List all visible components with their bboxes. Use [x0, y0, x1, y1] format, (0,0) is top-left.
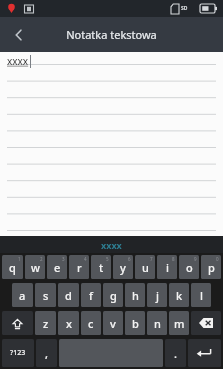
staticText: ?123: [10, 348, 26, 358]
staticText: ,: [45, 346, 49, 361]
button[interactable]: xxxx: [0, 52, 223, 236]
button[interactable]: j: [147, 283, 167, 307]
staticText: w: [31, 260, 40, 275]
button[interactable]: h: [125, 283, 145, 307]
staticText: h: [132, 288, 139, 303]
staticText: 7: [150, 256, 153, 262]
button[interactable]: f: [81, 283, 101, 307]
staticText: xxxx: [101, 239, 122, 251]
button[interactable]: c: [81, 311, 101, 335]
button[interactable]: q: [2, 255, 23, 279]
staticText: c: [88, 316, 94, 331]
button[interactable]: Backspace: [191, 311, 221, 335]
staticText: a: [19, 288, 26, 303]
staticText: p: [208, 260, 215, 275]
button[interactable]: u: [135, 255, 155, 279]
button[interactable]: p: [201, 255, 221, 279]
button[interactable]: a: [12, 283, 33, 307]
staticText: 1: [18, 256, 21, 262]
staticText: .: [174, 346, 177, 361]
staticText: m: [174, 316, 185, 331]
button[interactable]: v: [103, 311, 123, 335]
button[interactable]: e: [47, 255, 67, 279]
staticText: Notatka tekstowa: [66, 27, 157, 42]
staticText: 0: [216, 256, 219, 262]
button[interactable]: l: [191, 283, 211, 307]
button[interactable]: s: [35, 283, 56, 307]
button[interactable]: b: [125, 311, 145, 335]
staticText: e: [54, 260, 61, 275]
staticText: g: [110, 288, 117, 303]
staticText: n: [154, 316, 161, 331]
staticText: xxxx: [7, 54, 29, 68]
button[interactable]: y: [113, 255, 133, 279]
staticText: d: [65, 288, 72, 303]
staticText: SD: [181, 5, 188, 12]
button[interactable]: m: [169, 311, 189, 335]
button[interactable]: ,: [36, 339, 57, 367]
button[interactable]: Shift: [2, 311, 33, 335]
staticText: l: [200, 288, 203, 303]
staticText: j: [156, 288, 159, 303]
staticText: 3: [62, 256, 65, 262]
button[interactable]: o: [179, 255, 199, 279]
staticText: 9: [194, 256, 197, 262]
staticText: y: [120, 260, 126, 275]
staticText: i: [166, 260, 169, 275]
staticText: u: [142, 260, 149, 275]
staticText: v: [110, 316, 116, 331]
button[interactable]: k: [169, 283, 189, 307]
staticText: s: [43, 288, 49, 303]
button[interactable]: g: [103, 283, 123, 307]
staticText: 2: [40, 256, 43, 262]
staticText: 8: [172, 256, 175, 262]
staticText: z: [43, 316, 49, 331]
staticText: b: [132, 316, 139, 331]
staticText: k: [176, 288, 183, 303]
button[interactable]: d: [58, 283, 79, 307]
button[interactable]: Enter: [188, 339, 221, 367]
button[interactable]: xxxx: [93, 237, 130, 253]
staticText: t: [99, 260, 104, 275]
staticText: x: [66, 316, 72, 331]
staticText: 4: [84, 256, 87, 262]
button[interactable]: Back: [0, 17, 38, 52]
staticText: 5: [106, 256, 109, 262]
button[interactable]: w: [25, 255, 45, 279]
staticText: f: [89, 288, 93, 303]
button[interactable]: z: [35, 311, 56, 335]
button[interactable]: .: [165, 339, 186, 367]
button[interactable]: ?123: [2, 339, 34, 367]
button[interactable]: i: [157, 255, 177, 279]
button[interactable]: x: [58, 311, 79, 335]
button[interactable]: r: [69, 255, 89, 279]
staticText: o: [186, 260, 193, 275]
staticText: q: [9, 260, 16, 275]
button[interactable]: n: [147, 311, 167, 335]
staticText: r: [77, 260, 82, 275]
button[interactable]: t: [91, 255, 111, 279]
staticText: 6: [128, 256, 131, 262]
